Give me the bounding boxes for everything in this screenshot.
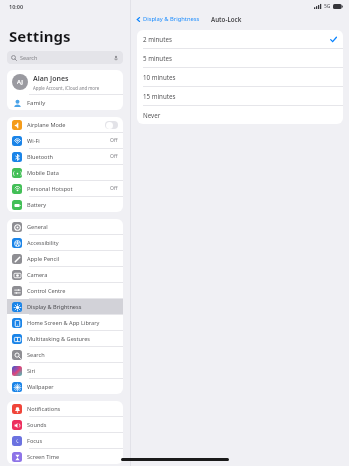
button[interactable]: Wallpaper	[7, 379, 123, 394]
button[interactable]: 5 minutes	[137, 49, 343, 67]
staticText: Multitasking & Gestures	[27, 335, 118, 343]
button[interactable]: Airplane Mode toggle	[105, 121, 118, 129]
button[interactable]: Accessibility	[7, 235, 123, 250]
button[interactable]: Screen Time	[7, 449, 123, 464]
button[interactable]: 2 minutes	[137, 30, 343, 48]
staticText: General	[27, 223, 118, 231]
button[interactable]: Control Centre	[7, 283, 123, 298]
button[interactable]: Display & Brightness	[7, 299, 123, 314]
staticText: Search	[27, 351, 118, 359]
staticText: Apple Account, iCloud and more	[33, 85, 100, 91]
button[interactable]: Battery	[7, 197, 123, 212]
button[interactable]: Search	[7, 51, 123, 64]
staticText: Apple Pencil	[27, 255, 118, 263]
staticText: Accessibility	[27, 239, 118, 247]
button[interactable]: Personal Hotspot	[7, 181, 123, 196]
button[interactable]: AJ	[7, 70, 123, 94]
staticText: 15 minutes	[143, 92, 337, 100]
button[interactable]: Apple Pencil	[7, 251, 123, 266]
staticText: 10:00	[9, 3, 24, 10]
staticText: Wallpaper	[27, 383, 118, 391]
staticText: 5G	[324, 3, 331, 10]
staticText: Siri	[27, 367, 118, 375]
staticText: Notifications	[27, 405, 118, 413]
button[interactable]: 10 minutes	[137, 68, 343, 86]
staticText: Never	[143, 111, 337, 119]
staticText: Off	[110, 137, 118, 144]
staticText: Mobile Data	[27, 169, 118, 177]
staticText: Wi-Fi	[27, 137, 110, 145]
staticText: Personal Hotspot	[27, 185, 110, 193]
staticText: Alan Jones	[33, 74, 69, 84]
button[interactable]: Display & Brightness	[136, 15, 200, 23]
staticText: Display & Brightness	[143, 15, 200, 23]
button[interactable]: Multitasking & Gestures	[7, 331, 123, 346]
staticText: Off	[110, 185, 118, 192]
staticText: Auto-Lock	[211, 15, 242, 23]
button[interactable]: Bluetooth	[7, 149, 123, 164]
staticText: 10 minutes	[143, 73, 337, 81]
button[interactable]: Notifications	[7, 401, 123, 416]
button[interactable]: Wi-Fi	[7, 133, 123, 148]
button[interactable]: Airplane Mode	[7, 117, 123, 132]
button[interactable]: Family	[7, 95, 123, 110]
button[interactable]: Mobile Data	[7, 165, 123, 180]
staticText: Battery	[27, 201, 118, 209]
button[interactable]: Home Screen & App Library	[7, 315, 123, 330]
staticText: Family	[27, 99, 46, 107]
button[interactable]: Search	[7, 347, 123, 362]
staticText: 5 minutes	[143, 54, 337, 62]
button[interactable]: Siri	[7, 363, 123, 378]
staticText: Airplane Mode	[27, 121, 105, 129]
staticText: Screen Time	[27, 453, 118, 461]
staticText: Display & Brightness	[27, 303, 118, 311]
staticText: Search	[20, 54, 38, 61]
button[interactable]: Never	[137, 106, 343, 124]
staticText: Control Centre	[27, 287, 118, 295]
staticText: Focus	[27, 437, 118, 445]
staticText: Camera	[27, 271, 118, 279]
staticText: Home Screen & App Library	[27, 319, 118, 327]
staticText: Settings	[9, 26, 71, 46]
button[interactable]: 15 minutes	[137, 87, 343, 105]
staticText: Bluetooth	[27, 153, 110, 161]
button[interactable]: General	[7, 219, 123, 234]
staticText: Off	[110, 153, 118, 160]
button[interactable]: Camera	[7, 267, 123, 282]
button[interactable]: Focus	[7, 433, 123, 448]
button[interactable]: Sounds	[7, 417, 123, 432]
staticText: Sounds	[27, 421, 118, 429]
staticText: AJ	[17, 78, 23, 86]
staticText: 2 minutes	[143, 35, 330, 43]
